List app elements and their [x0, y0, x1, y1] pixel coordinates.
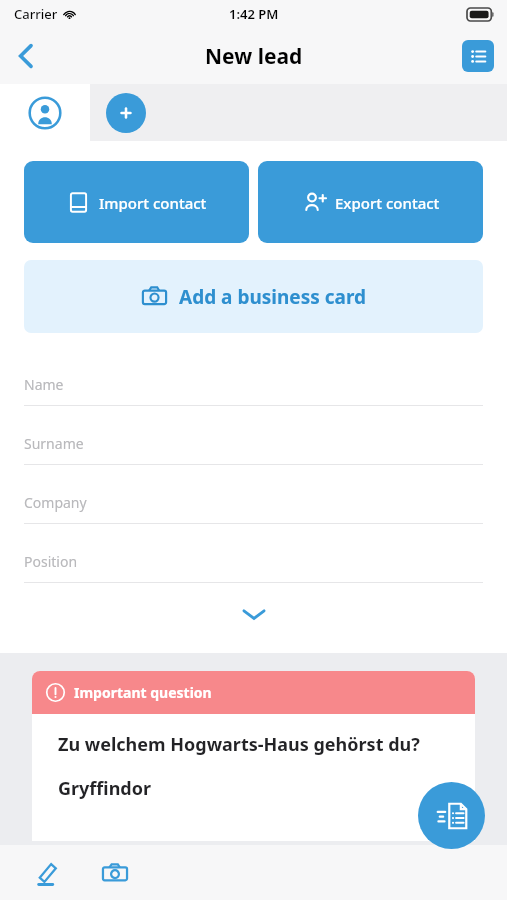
staticText: New lead	[205, 42, 303, 71]
button[interactable]	[0, 84, 90, 141]
button[interactable]: Survey	[418, 782, 485, 849]
button[interactable]: Back	[0, 30, 52, 82]
staticText: Zu welchem Hogwarts-Haus gehörst du?	[58, 732, 420, 757]
button[interactable]: Expand	[0, 597, 507, 631]
button[interactable]: Name	[24, 375, 483, 406]
staticText: Gryffindor	[58, 776, 152, 801]
staticText: Position	[24, 552, 78, 571]
button[interactable]: Position	[24, 552, 483, 583]
button[interactable]: Export contact	[258, 161, 483, 243]
staticText: 1:42 PM	[229, 5, 279, 23]
button[interactable]: Surname	[24, 434, 483, 465]
button[interactable]: List	[462, 40, 494, 72]
staticText: Important question	[74, 683, 212, 702]
button[interactable]: Edit	[26, 852, 68, 894]
button[interactable]: Important question	[32, 671, 475, 841]
staticText: Import contact	[99, 193, 207, 213]
button[interactable]: Add	[106, 93, 146, 133]
button[interactable]: Add a business card	[24, 260, 483, 333]
button[interactable]: Camera	[94, 852, 136, 894]
button[interactable]: Company	[24, 493, 483, 524]
staticText: Carrier	[14, 5, 58, 23]
staticText: Export contact	[335, 193, 440, 213]
staticText: Surname	[24, 434, 84, 453]
staticText: Name	[24, 375, 64, 394]
staticText: Company	[24, 493, 87, 512]
button[interactable]: Import contact	[24, 161, 249, 243]
staticText: Add a business card	[179, 284, 367, 310]
